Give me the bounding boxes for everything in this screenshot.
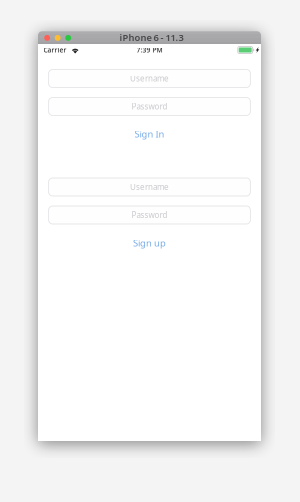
button[interactable]: Sign up <box>38 237 261 249</box>
staticText: 7:39 PM <box>136 46 162 54</box>
staticText: Username <box>130 73 169 84</box>
staticText: iPhone 6 - 11.3 <box>119 31 183 44</box>
staticText: Password <box>131 210 167 220</box>
staticText: Username <box>130 182 169 192</box>
button[interactable]: Username <box>49 69 250 87</box>
button[interactable]: Sign In <box>38 128 261 140</box>
staticText: Sign up <box>133 237 166 249</box>
button[interactable]: Zoom <box>65 35 71 41</box>
button[interactable]: Password <box>49 206 250 224</box>
button[interactable]: Username <box>49 178 250 196</box>
button[interactable]: Close <box>44 35 50 41</box>
button[interactable]: Password <box>49 97 250 115</box>
staticText: Password <box>131 101 167 112</box>
staticText: Carrier <box>43 46 66 54</box>
button[interactable]: Minimise <box>55 35 61 41</box>
staticText: Sign In <box>134 128 164 140</box>
